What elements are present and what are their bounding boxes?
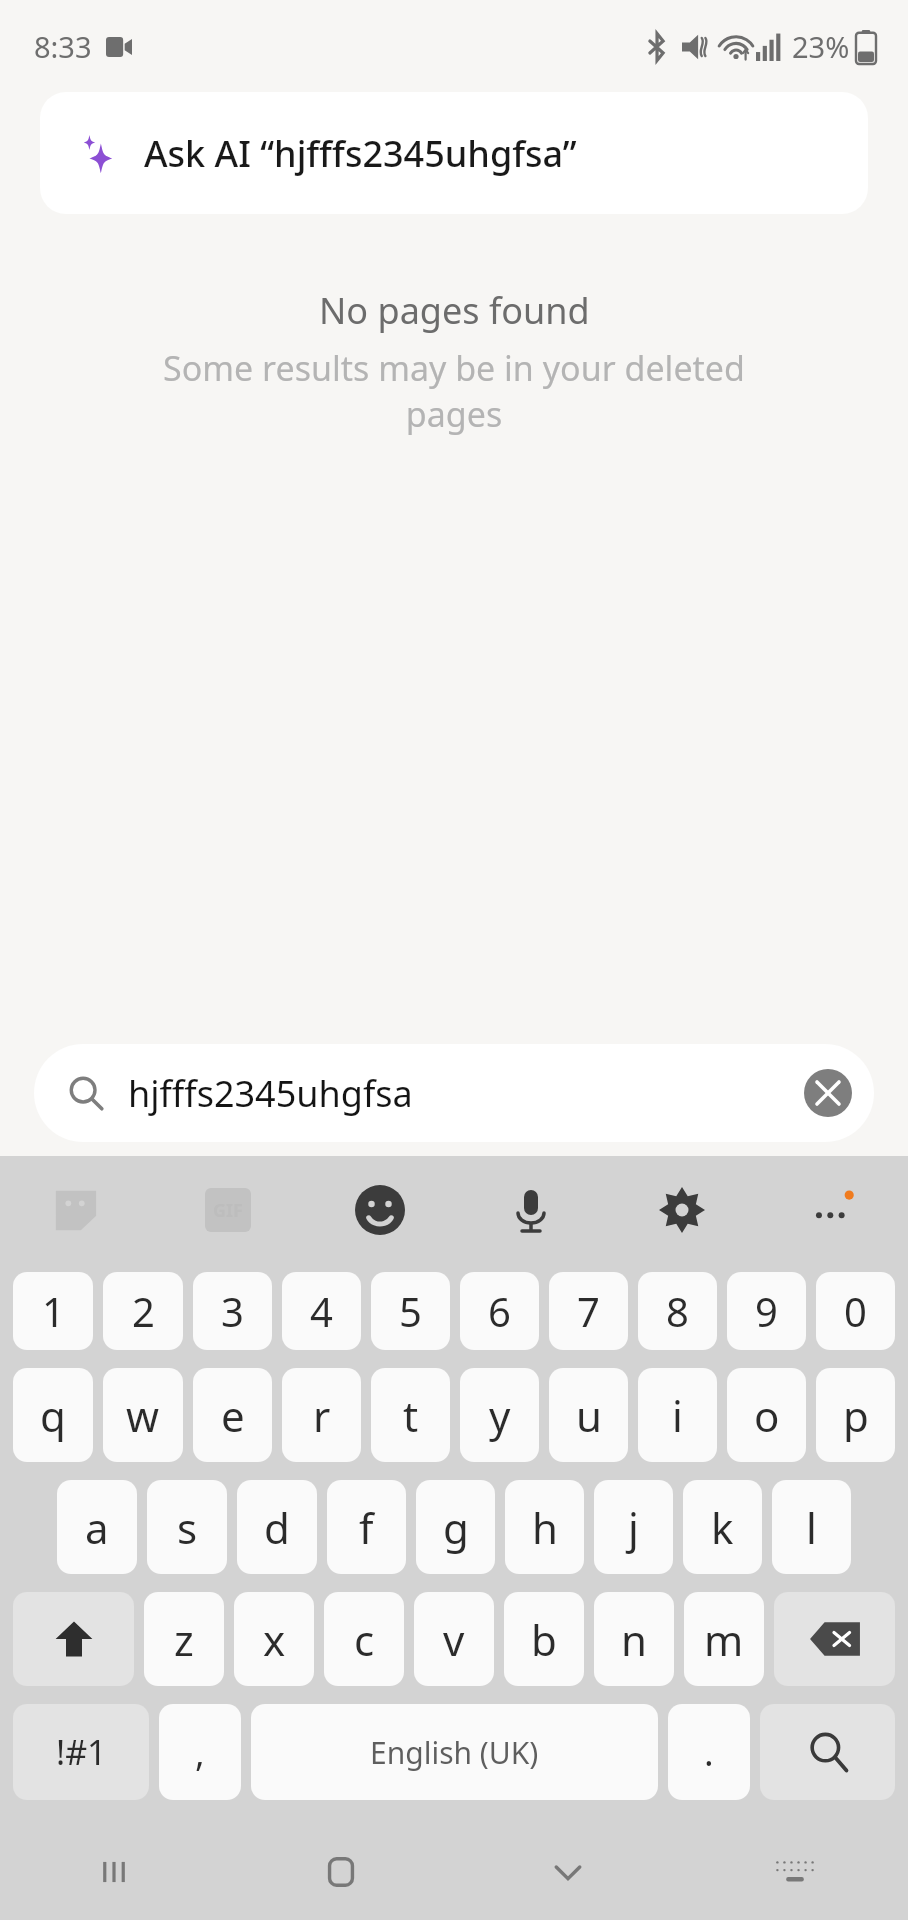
button[interactable]: u: [549, 1368, 628, 1462]
staticText: 8:33: [34, 27, 92, 66]
staticText: r: [313, 1387, 331, 1444]
staticText: .: [704, 1728, 714, 1777]
staticText: 0: [844, 1284, 867, 1338]
button[interactable]: Hide keyboard: [681, 1824, 908, 1920]
staticText: a: [85, 1499, 109, 1556]
button[interactable]: Ask AI “hjfffs2345uhgfsa”: [40, 92, 868, 214]
button[interactable]: Back: [454, 1824, 681, 1920]
button[interactable]: o: [727, 1368, 806, 1462]
button[interactable]: Search: [760, 1704, 895, 1800]
staticText: s: [177, 1499, 198, 1556]
staticText: v: [443, 1611, 465, 1668]
staticText: Ask AI “hjfffs2345uhgfsa”: [144, 129, 577, 178]
staticText: ,: [195, 1728, 205, 1777]
button[interactable]: s: [147, 1480, 227, 1574]
button[interactable]: f: [327, 1480, 406, 1574]
staticText: 3: [221, 1284, 244, 1338]
button[interactable]: Clear search: [804, 1069, 852, 1117]
button[interactable]: i: [638, 1368, 717, 1462]
button[interactable]: k: [683, 1480, 762, 1574]
button[interactable]: Backspace: [774, 1592, 895, 1686]
staticText: h: [532, 1499, 558, 1556]
button[interactable]: hjfffs2345uhgfsa: [34, 1044, 874, 1142]
button[interactable]: More options: [757, 1156, 908, 1264]
staticText: 5: [399, 1284, 422, 1338]
button[interactable]: 2: [103, 1272, 183, 1350]
button[interactable]: y: [460, 1368, 539, 1462]
button[interactable]: h: [505, 1480, 584, 1574]
button[interactable]: n: [594, 1592, 674, 1686]
staticText: 7: [577, 1284, 600, 1338]
button[interactable]: e: [193, 1368, 272, 1462]
button[interactable]: Recent apps: [0, 1824, 227, 1920]
button[interactable]: d: [237, 1480, 317, 1574]
button[interactable]: p: [816, 1368, 895, 1462]
button[interactable]: Emoji: [304, 1156, 455, 1264]
staticText: o: [754, 1387, 780, 1444]
button[interactable]: t: [371, 1368, 450, 1462]
staticText: d: [264, 1499, 290, 1556]
staticText: p: [843, 1387, 869, 1444]
button[interactable]: Voice input: [455, 1156, 606, 1264]
button[interactable]: 8: [638, 1272, 717, 1350]
button[interactable]: l: [772, 1480, 851, 1574]
button[interactable]: Keyboard settings: [606, 1156, 757, 1264]
button[interactable]: Stickers: [0, 1156, 152, 1264]
staticText: Some results may be in your deleted page…: [140, 345, 768, 437]
staticText: 8: [666, 1284, 689, 1338]
button[interactable]: !#1: [13, 1704, 149, 1800]
staticText: y: [489, 1387, 511, 1444]
button[interactable]: 7: [549, 1272, 628, 1350]
staticText: t: [403, 1387, 419, 1444]
button[interactable]: q: [13, 1368, 93, 1462]
button[interactable]: m: [684, 1592, 764, 1686]
button[interactable]: English (UK): [251, 1704, 658, 1800]
button[interactable]: 5: [371, 1272, 450, 1350]
staticText: n: [621, 1611, 647, 1668]
staticText: e: [221, 1387, 245, 1444]
staticText: k: [711, 1499, 734, 1556]
staticText: 4: [310, 1284, 333, 1338]
staticText: q: [40, 1387, 66, 1444]
staticText: c: [354, 1611, 375, 1668]
staticText: 2: [132, 1284, 155, 1338]
button[interactable]: j: [594, 1480, 673, 1574]
staticText: 6: [488, 1284, 511, 1338]
button[interactable]: a: [57, 1480, 137, 1574]
button[interactable]: 9: [727, 1272, 806, 1350]
staticText: z: [174, 1611, 194, 1668]
button[interactable]: b: [504, 1592, 584, 1686]
button[interactable]: Shift: [13, 1592, 134, 1686]
staticText: English (UK): [370, 1732, 539, 1773]
button[interactable]: GIF: [152, 1156, 304, 1264]
staticText: f: [359, 1499, 374, 1556]
button[interactable]: Home: [227, 1824, 454, 1920]
button[interactable]: g: [416, 1480, 495, 1574]
button[interactable]: z: [144, 1592, 224, 1686]
button[interactable]: 1: [13, 1272, 93, 1350]
button[interactable]: 6: [460, 1272, 539, 1350]
staticText: i: [672, 1387, 683, 1444]
button[interactable]: x: [234, 1592, 314, 1686]
button[interactable]: ,: [159, 1704, 241, 1800]
button[interactable]: 0: [816, 1272, 895, 1350]
staticText: 23%: [792, 27, 850, 66]
staticText: 1: [42, 1284, 65, 1338]
staticText: m: [704, 1611, 744, 1668]
button[interactable]: 3: [193, 1272, 272, 1350]
button[interactable]: w: [103, 1368, 183, 1462]
button[interactable]: c: [324, 1592, 404, 1686]
staticText: w: [126, 1387, 160, 1444]
staticText: hjfffs2345uhgfsa: [128, 1069, 413, 1118]
staticText: u: [576, 1387, 602, 1444]
staticText: !#1: [56, 1729, 107, 1775]
staticText: x: [263, 1611, 286, 1668]
button[interactable]: .: [668, 1704, 750, 1800]
button[interactable]: 4: [282, 1272, 361, 1350]
staticText: 9: [755, 1284, 778, 1338]
button[interactable]: v: [414, 1592, 494, 1686]
button[interactable]: r: [282, 1368, 361, 1462]
staticText: j: [628, 1499, 639, 1556]
staticText: b: [531, 1611, 557, 1668]
